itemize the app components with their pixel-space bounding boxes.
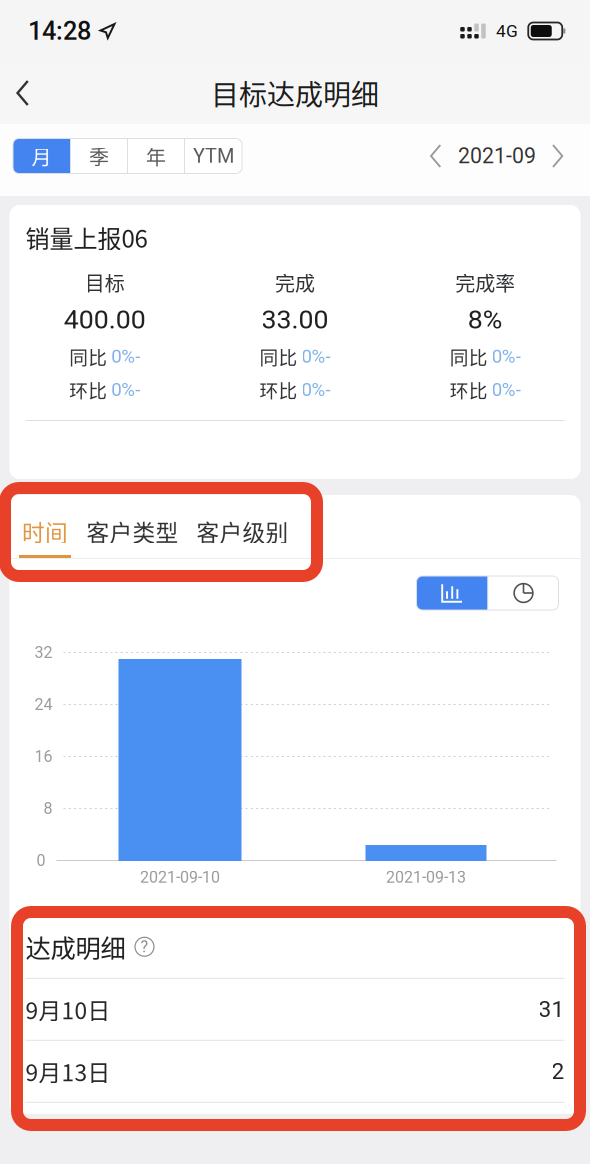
staticText: YTM [193,144,234,168]
staticText: 同比 [450,343,488,370]
button[interactable]: 月 [13,138,70,173]
button[interactable]: YTM [185,138,242,173]
staticText: 客户类型 [86,515,178,548]
button[interactable]: 季 [71,138,127,173]
staticText: 环比 [259,376,297,403]
button[interactable]: 年 [128,138,184,173]
staticText: 400.00 [64,304,146,335]
button[interactable]: Next month [545,136,571,176]
staticText: 9月13日 [25,1055,110,1088]
button[interactable]: Bar chart [416,576,487,610]
staticText: 目标 [85,268,125,297]
staticText: 完成率 [455,268,515,297]
staticText: 32 [34,643,52,662]
staticText: 0 [36,851,45,870]
staticText: 8 [43,799,52,818]
staticText: 年 [146,141,166,170]
staticText: 同比 [69,343,107,370]
staticText: 24 [34,695,52,714]
staticText: 环比 [450,376,488,403]
staticText: 0%- [111,345,140,367]
staticText: 时间 [22,515,68,548]
staticText: 14:28 [28,16,91,46]
button[interactable]: 时间 [21,495,68,558]
button[interactable]: Back [0,70,46,116]
staticText: 同比 [259,343,297,370]
staticText: 16 [34,747,52,766]
button[interactable]: 客户级别 [178,495,288,558]
staticText: 2 [551,1058,564,1085]
staticText: ? [140,937,148,956]
staticText: 季 [89,141,109,170]
button[interactable]: Previous month [423,136,449,176]
staticText: 完成 [275,268,315,297]
button[interactable]: 9月10日 [9,979,580,1041]
staticText: 31 [538,996,564,1023]
staticText: 月 [31,141,51,170]
staticText: 销量上报06 [25,220,147,255]
staticText: 0%- [301,379,330,400]
staticText: 2021-09 [458,143,536,168]
staticText: 0%- [492,379,521,400]
staticText: 2021-09-10 [140,868,220,887]
staticText: 4G [496,21,518,41]
staticText: 0%- [492,345,521,367]
button[interactable]: 9月13日 [9,1041,580,1103]
staticText: 达成明细 [25,928,125,965]
staticText: 目标达成明细 [211,73,379,113]
staticText: 环比 [69,376,107,403]
button[interactable]: 客户类型 [68,495,178,558]
staticText: 33.00 [261,304,328,335]
staticText: 8% [468,304,503,335]
staticText: 0%- [111,379,140,400]
staticText: 9月10日 [25,993,110,1026]
staticText: 0%- [301,345,330,367]
staticText: 2021-09-13 [386,868,466,887]
staticText: 客户级别 [196,515,288,548]
button[interactable]: Pie chart [488,576,558,610]
